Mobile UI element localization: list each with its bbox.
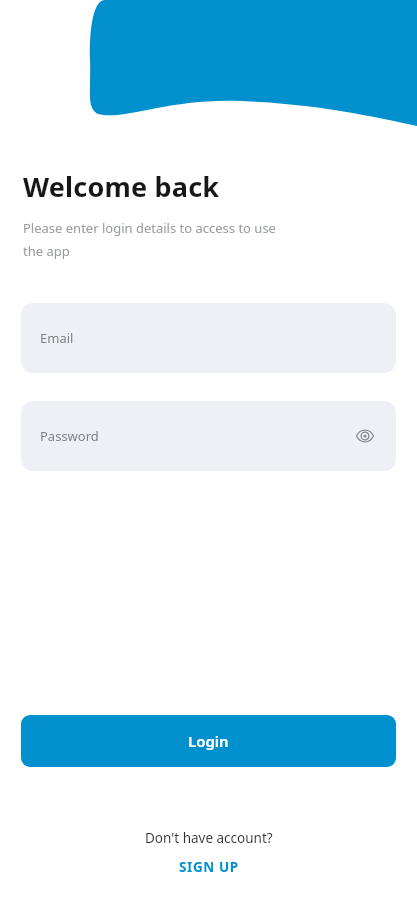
staticText: Please enter login details to access to … bbox=[23, 219, 276, 260]
button[interactable]: Login bbox=[21, 715, 396, 767]
staticText: Don't have account? bbox=[145, 829, 273, 847]
button[interactable]: Password bbox=[21, 401, 396, 471]
staticText: Login bbox=[188, 731, 229, 751]
staticText: Password bbox=[40, 427, 352, 445]
staticText: Email bbox=[40, 329, 378, 347]
staticText: SIGN UP bbox=[179, 858, 239, 876]
button[interactable]: SIGN UP bbox=[173, 856, 245, 878]
button[interactable]: Show password bbox=[352, 423, 378, 449]
button[interactable]: Email bbox=[21, 303, 396, 373]
staticText: Welcome back bbox=[23, 168, 220, 205]
